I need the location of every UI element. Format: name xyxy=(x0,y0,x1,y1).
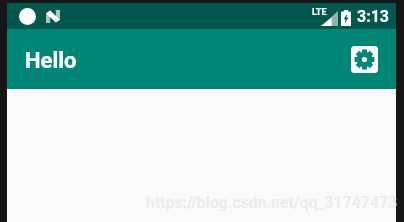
button[interactable]: Settings xyxy=(351,46,378,73)
staticText: 3:13 xyxy=(357,7,390,26)
staticText: LTE xyxy=(312,7,327,18)
staticText: Hello xyxy=(25,48,77,74)
staticText: https://blog.csdn.net/qq_31747473 xyxy=(146,193,398,212)
